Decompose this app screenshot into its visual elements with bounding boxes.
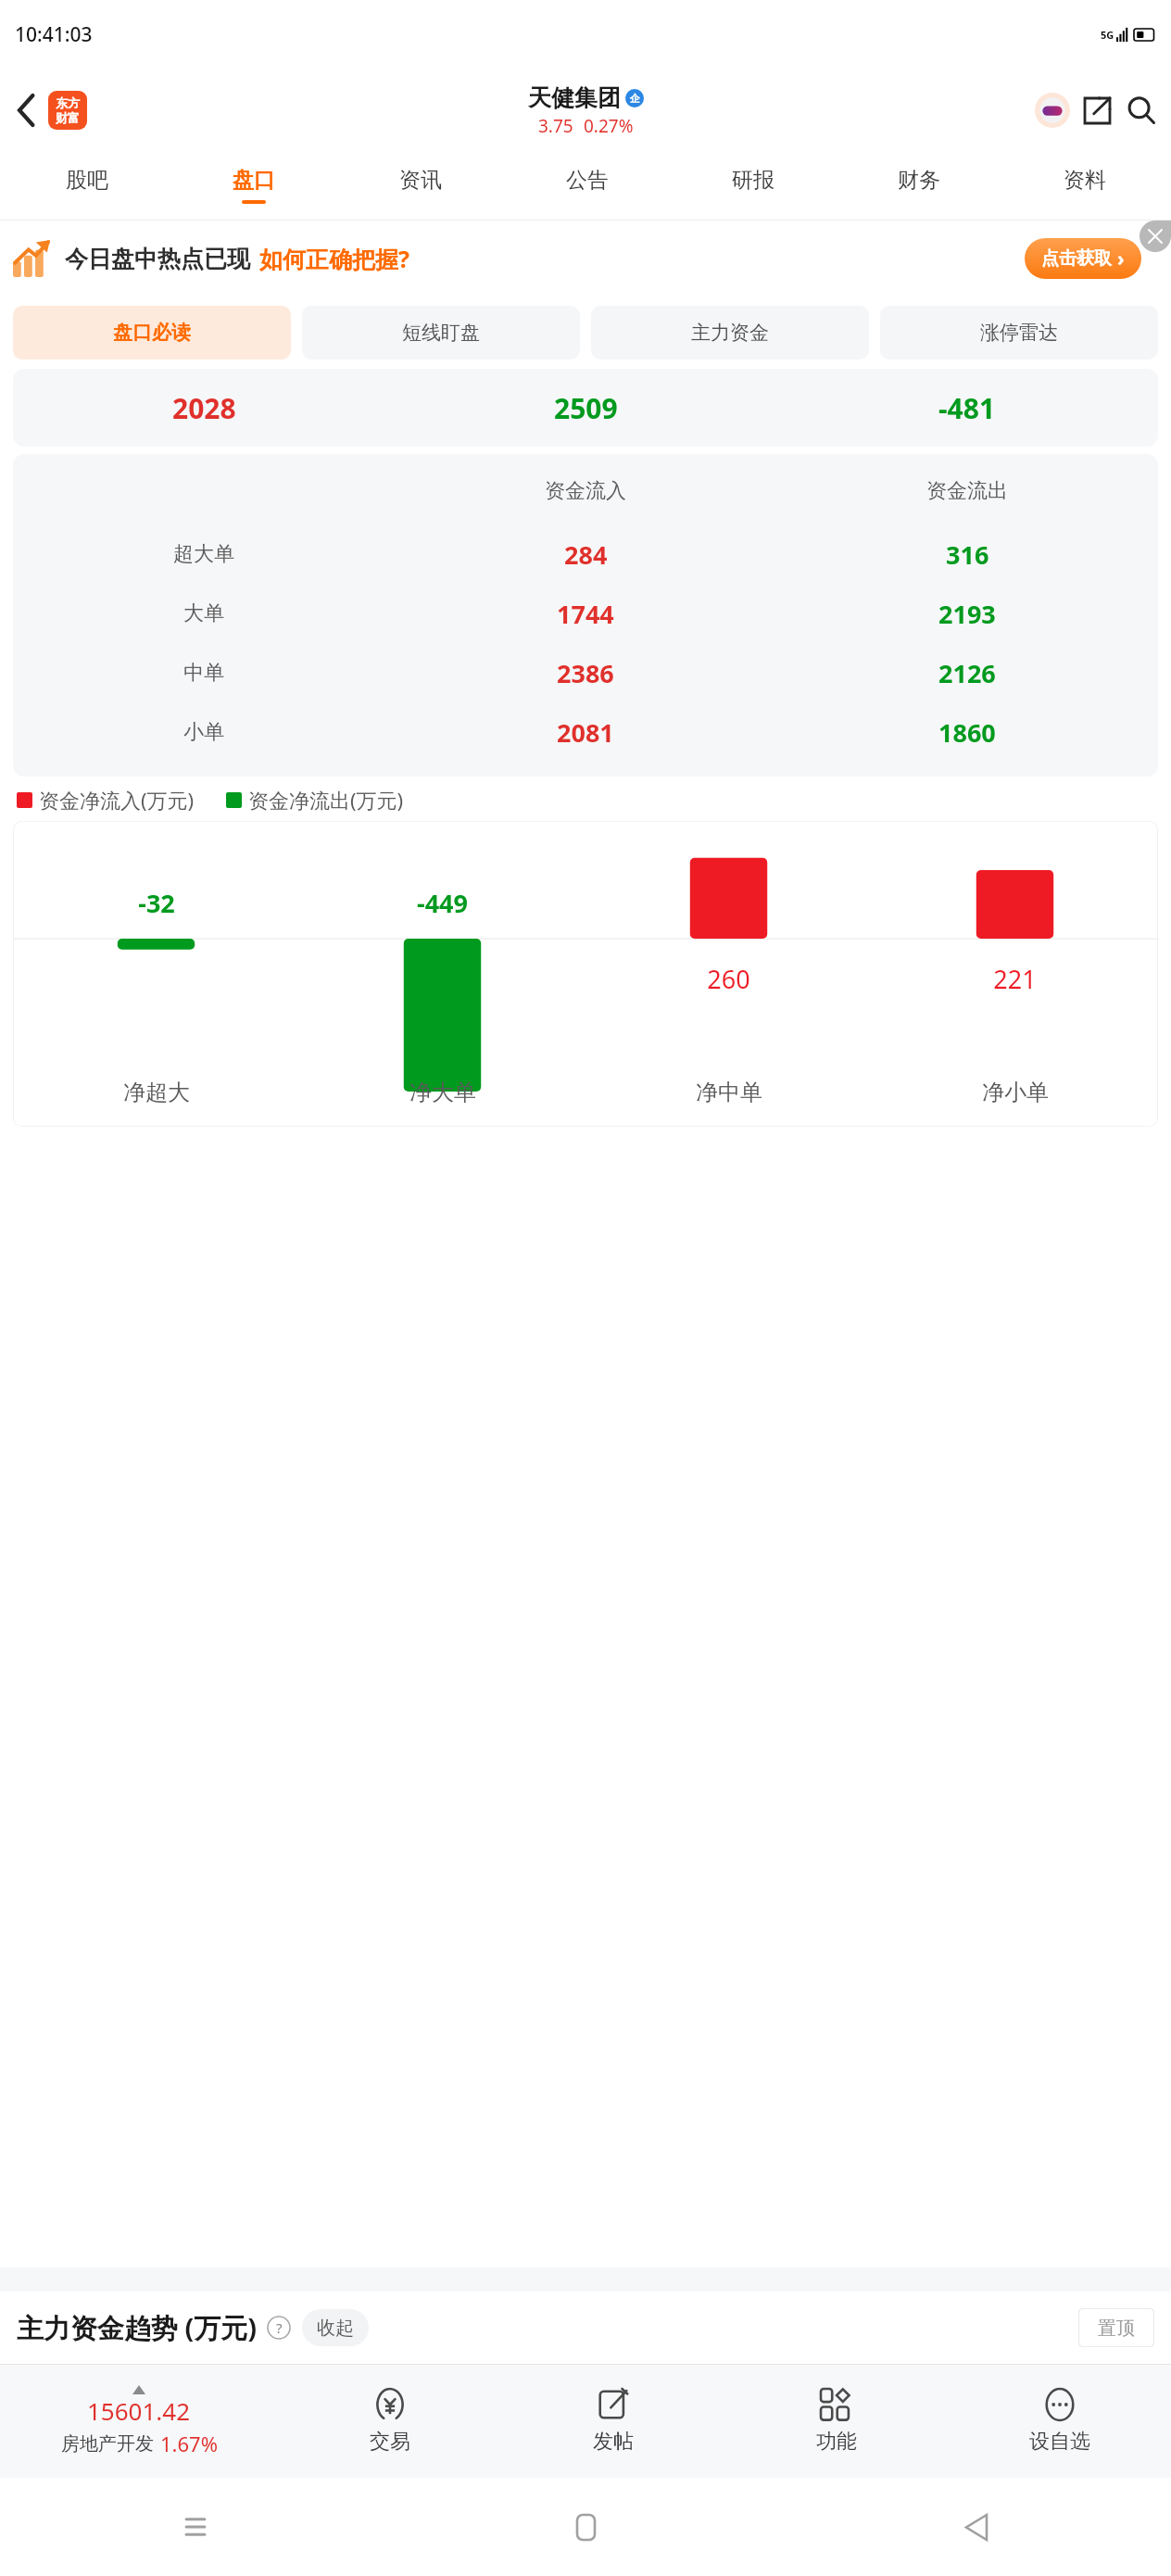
staticText: 大单 bbox=[183, 600, 224, 626]
staticText: 盘口 bbox=[233, 167, 275, 194]
staticText: 财富 bbox=[56, 110, 80, 125]
button[interactable]: 公告 bbox=[504, 151, 670, 220]
staticText: 企 bbox=[630, 92, 640, 105]
staticText: 221 bbox=[993, 962, 1037, 996]
staticText: 主力资金 bbox=[691, 321, 769, 345]
button[interactable]: 15601.42 bbox=[0, 2365, 278, 2478]
staticText: 净大单 bbox=[409, 1079, 476, 1106]
staticText: 2028 bbox=[172, 389, 236, 427]
button[interactable]: 收起 bbox=[302, 2309, 369, 2346]
staticText: 超大单 bbox=[173, 541, 234, 567]
staticText: 1744 bbox=[557, 597, 614, 631]
staticText: 3.75 bbox=[538, 114, 573, 138]
staticText: 点击获取 bbox=[1041, 247, 1112, 270]
staticText: 2193 bbox=[938, 597, 996, 631]
staticText: 260 bbox=[707, 962, 750, 996]
button[interactable]: Search bbox=[1119, 88, 1164, 133]
staticText: ? bbox=[276, 2318, 283, 2337]
staticText: 净超大 bbox=[123, 1079, 190, 1106]
staticText: -32 bbox=[138, 886, 175, 920]
button[interactable]: Back bbox=[781, 2478, 1171, 2576]
staticText: 如何正确把握? bbox=[259, 243, 409, 274]
staticText: 公告 bbox=[566, 167, 609, 194]
button[interactable]: 盘口 bbox=[170, 151, 337, 220]
button[interactable]: 大单 bbox=[13, 584, 1158, 643]
button[interactable]: 资讯 bbox=[337, 151, 504, 220]
staticText: 1.67% bbox=[160, 2430, 218, 2457]
button[interactable]: 功能 bbox=[724, 2365, 948, 2478]
staticText: 资料 bbox=[1064, 167, 1106, 194]
staticText: 发帖 bbox=[593, 2429, 634, 2455]
button[interactable]: Close ad bbox=[1140, 221, 1171, 252]
staticText: 284 bbox=[564, 537, 608, 572]
button[interactable]: 小单 bbox=[13, 702, 1158, 762]
staticText: 功能 bbox=[816, 2429, 857, 2455]
staticText: 短线盯盘 bbox=[402, 321, 480, 345]
staticText: -449 bbox=[417, 886, 468, 920]
button[interactable]: 盘口必读 bbox=[13, 306, 291, 360]
button[interactable]: 设自选 bbox=[948, 2365, 1171, 2478]
staticText: 小单 bbox=[183, 719, 224, 745]
staticText: 天健集团 bbox=[528, 83, 621, 112]
staticText: 设自选 bbox=[1029, 2429, 1090, 2455]
staticText: 316 bbox=[946, 537, 989, 572]
button[interactable]: 股吧 bbox=[4, 151, 170, 220]
staticText: 财务 bbox=[898, 167, 940, 194]
staticText: 房地产开发 bbox=[61, 2432, 154, 2456]
staticText: 15601.42 bbox=[87, 2394, 191, 2427]
button[interactable]: 交易 bbox=[278, 2365, 501, 2478]
button[interactable]: 今日盘中热点已现 bbox=[0, 221, 1171, 297]
staticText: 研报 bbox=[732, 167, 774, 194]
staticText: 资讯 bbox=[399, 167, 442, 194]
button[interactable]: 发帖 bbox=[501, 2365, 724, 2478]
button[interactable]: -32 bbox=[13, 821, 1158, 1127]
staticText: 资金净流入(万元) bbox=[39, 786, 195, 814]
staticText: 今日盘中热点已现 bbox=[65, 245, 250, 273]
button[interactable]: 涨停雷达 bbox=[880, 306, 1158, 360]
button[interactable]: 点击获取 bbox=[1025, 238, 1141, 279]
button[interactable]: 置顶 bbox=[1078, 2308, 1154, 2347]
staticText: 2509 bbox=[554, 389, 618, 427]
staticText: -481 bbox=[938, 389, 996, 427]
button[interactable]: 中单 bbox=[13, 643, 1158, 702]
staticText: 净中单 bbox=[696, 1079, 762, 1106]
staticText: 中单 bbox=[183, 660, 224, 686]
button[interactable]: Home bbox=[391, 2478, 781, 2576]
button[interactable]: 主力资金 bbox=[591, 306, 869, 360]
button[interactable]: Share bbox=[1075, 88, 1119, 133]
button[interactable]: Recents bbox=[0, 2478, 391, 2576]
button[interactable]: 研报 bbox=[670, 151, 836, 220]
button[interactable]: 财务 bbox=[836, 151, 1001, 220]
staticText: 东方 bbox=[56, 95, 80, 110]
button[interactable]: East Money home bbox=[48, 91, 87, 130]
staticText: 10:41:03 bbox=[15, 21, 93, 48]
staticText: 2081 bbox=[557, 715, 614, 750]
staticText: 盘口必读 bbox=[113, 321, 191, 345]
button[interactable]: 超大单 bbox=[13, 524, 1158, 584]
staticText: 收起 bbox=[317, 2317, 354, 2340]
button[interactable]: Back bbox=[6, 89, 48, 132]
staticText: › bbox=[1117, 246, 1125, 272]
staticText: 1860 bbox=[938, 715, 996, 750]
staticText: 涨停雷达 bbox=[980, 321, 1058, 345]
button[interactable]: 2028 bbox=[13, 369, 1158, 447]
staticText: 资金流入 bbox=[545, 478, 626, 504]
staticText: 置顶 bbox=[1098, 2317, 1135, 2340]
staticText: 资金净流出(万元) bbox=[248, 786, 404, 814]
button[interactable]: 短线盯盘 bbox=[302, 306, 580, 360]
staticText: 资金流出 bbox=[926, 478, 1008, 504]
staticText: 2386 bbox=[557, 656, 614, 690]
staticText: 净小单 bbox=[982, 1079, 1049, 1106]
button[interactable]: AI assistant bbox=[1030, 88, 1075, 133]
staticText: 主力资金趋势 (万元) bbox=[17, 2309, 258, 2346]
staticText: 5G bbox=[1101, 28, 1114, 42]
staticText: 0.27% bbox=[584, 114, 634, 138]
button[interactable]: 资料 bbox=[1001, 151, 1167, 220]
staticText: 交易 bbox=[370, 2429, 410, 2455]
button[interactable]: Help bbox=[267, 2316, 291, 2340]
staticText: 2126 bbox=[938, 656, 996, 690]
staticText: 股吧 bbox=[66, 167, 108, 194]
button[interactable]: 天健集团 bbox=[528, 83, 644, 138]
